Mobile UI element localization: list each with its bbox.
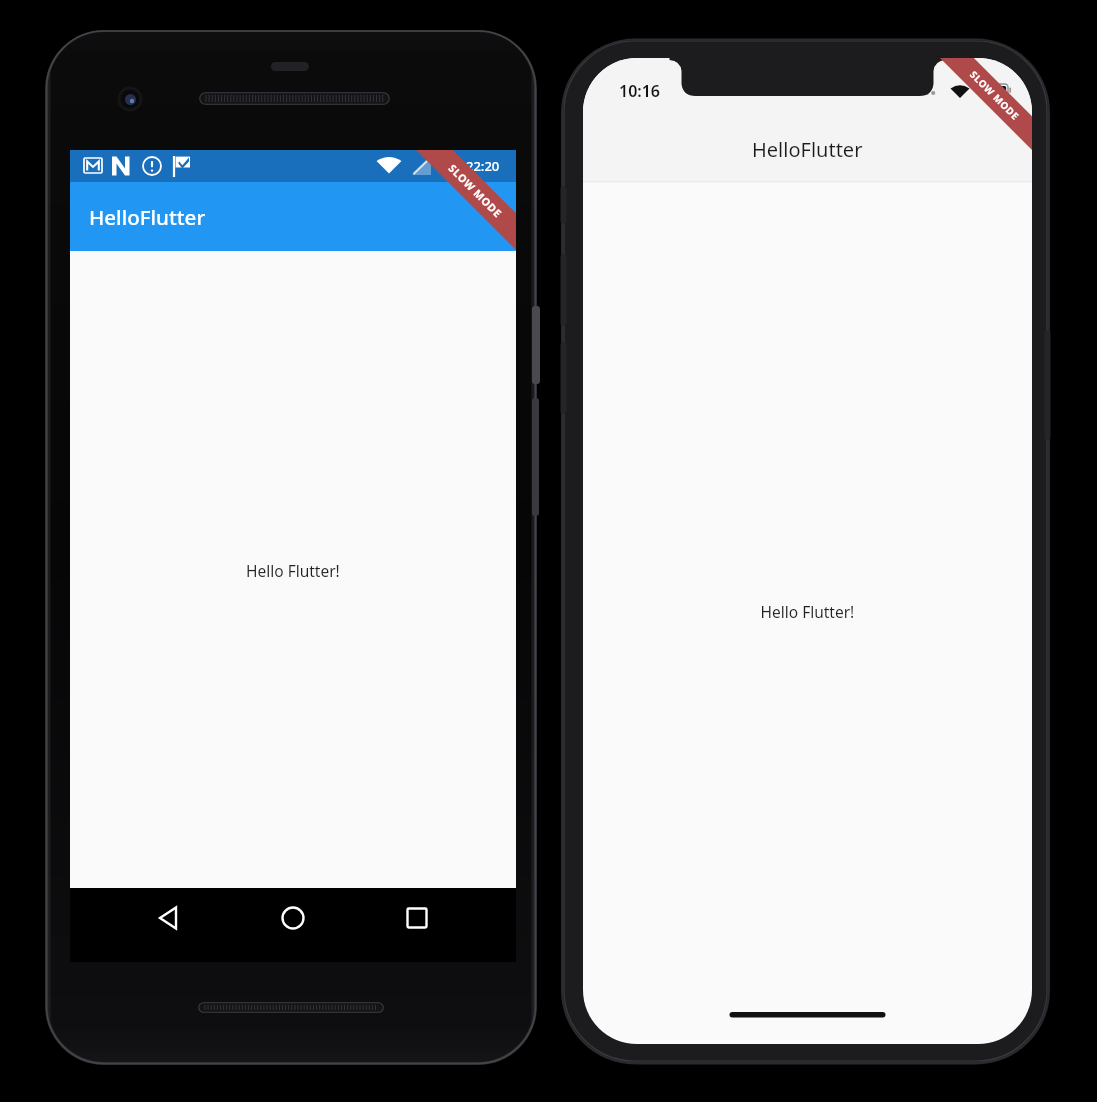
button[interactable]: Recent apps [360,888,440,962]
button[interactable]: HelloFlutter app bar [70,182,516,251]
button[interactable]: Back [146,888,226,962]
button[interactable]: Home [253,888,333,962]
button[interactable]: HelloFlutter navigation bar [583,112,1032,182]
